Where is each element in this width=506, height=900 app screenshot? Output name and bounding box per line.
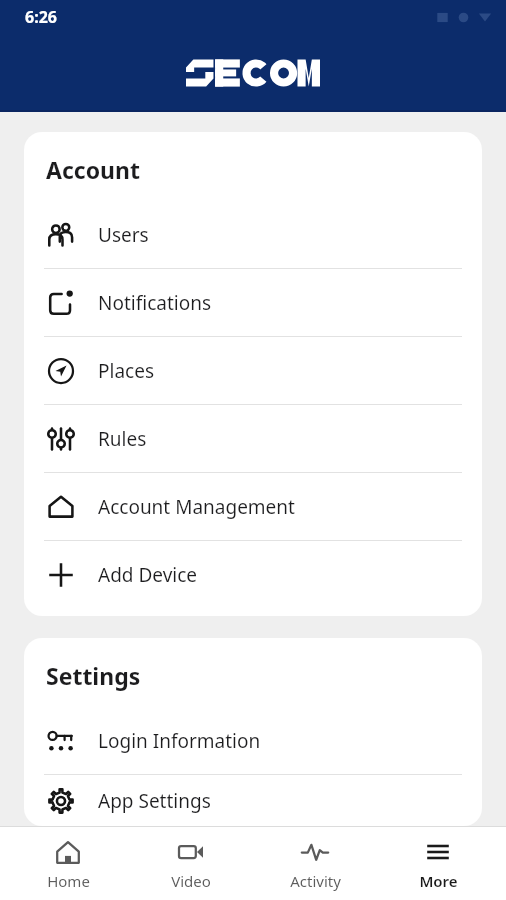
button[interactable]: Add Device	[24, 541, 482, 608]
staticText: Video	[171, 871, 211, 891]
button[interactable]: Rules	[24, 405, 482, 472]
button[interactable]: Users	[24, 201, 482, 268]
button[interactable]: Home	[13, 833, 123, 895]
staticText: Home	[47, 871, 90, 891]
staticText: Settings	[46, 660, 141, 691]
staticText: Users	[98, 222, 149, 248]
button[interactable]: Activity	[260, 833, 370, 895]
button[interactable]: Video	[136, 833, 246, 895]
staticText: Activity	[290, 871, 341, 891]
button[interactable]: Login Information	[24, 707, 482, 774]
button[interactable]: More	[383, 833, 493, 895]
staticText: Places	[98, 358, 154, 384]
button[interactable]: Notifications	[24, 269, 482, 336]
other: SECOM	[186, 56, 320, 90]
staticText: Account	[46, 154, 140, 185]
staticText: More	[419, 871, 458, 891]
staticText: Add Device	[98, 562, 198, 588]
staticText: 6:26	[25, 6, 57, 28]
staticText: App Settings	[98, 788, 211, 814]
button[interactable]: Places	[24, 337, 482, 404]
staticText: Login Information	[98, 728, 261, 754]
button[interactable]: App Settings	[24, 775, 482, 826]
button[interactable]: Account Management	[24, 473, 482, 540]
staticText: Notifications	[98, 290, 212, 316]
staticText: Rules	[98, 426, 147, 452]
staticText: Account Management	[98, 494, 295, 520]
